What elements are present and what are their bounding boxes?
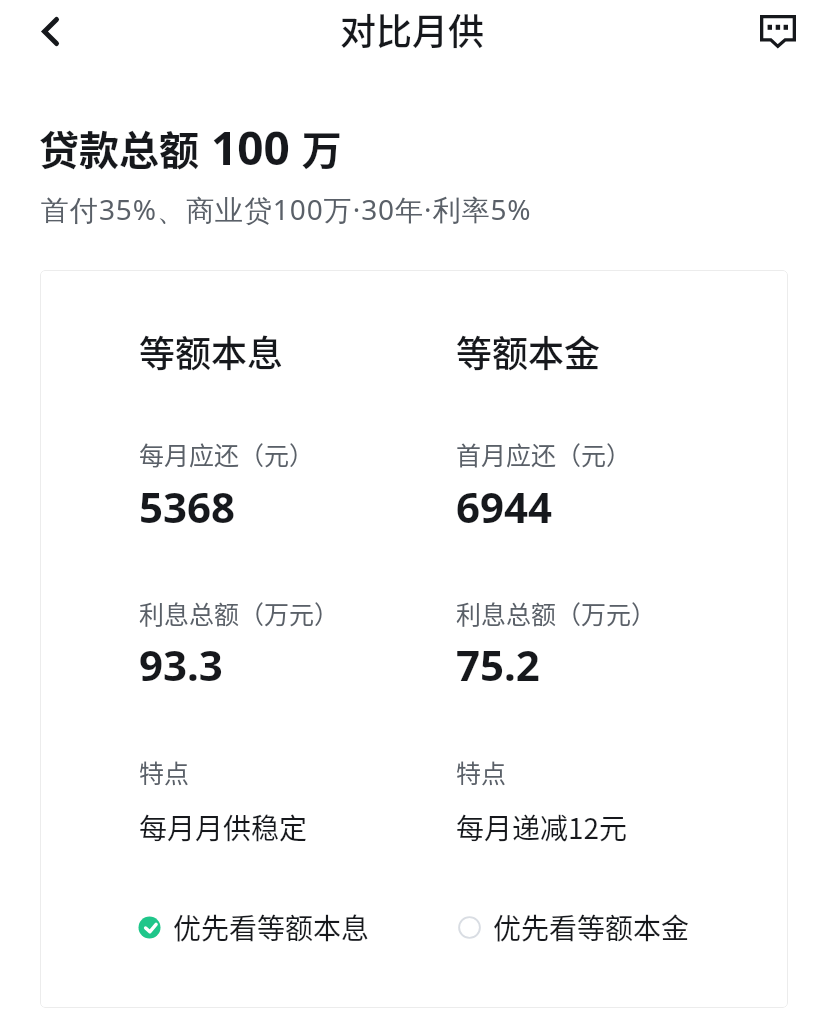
- staticText: 优先看等额本息: [173, 907, 370, 948]
- button[interactable]: Feedback: [748, 0, 808, 60]
- staticText: 首付35%、商业贷100万·30年·利率5%: [41, 190, 532, 228]
- staticText: 优先看等额本金: [493, 907, 690, 948]
- staticText: 特点: [456, 754, 507, 790]
- staticText: 利息总额（万元）: [139, 595, 340, 631]
- staticText: 每月月供稳定: [139, 807, 308, 848]
- staticText: 每月应还（元）: [139, 436, 315, 472]
- button[interactable]: 优先看等额本金: [458, 897, 690, 958]
- staticText: 6944: [456, 478, 553, 535]
- button[interactable]: 优先看等额本息: [138, 897, 370, 958]
- staticText: 93.3: [139, 636, 223, 693]
- staticText: 首月应还（元）: [456, 436, 632, 472]
- staticText: 每月递减12元: [456, 807, 628, 848]
- staticText: 等额本金: [456, 325, 601, 377]
- button[interactable]: Back: [20, 1, 80, 61]
- staticText: 对比月供: [340, 3, 485, 55]
- staticText: 特点: [139, 754, 190, 790]
- staticText: 75.2: [456, 636, 540, 693]
- staticText: 等额本息: [139, 325, 284, 377]
- staticText: 5368: [139, 478, 236, 535]
- staticText: 贷款总额 100 万: [39, 116, 342, 179]
- staticText: 利息总额（万元）: [456, 595, 657, 631]
